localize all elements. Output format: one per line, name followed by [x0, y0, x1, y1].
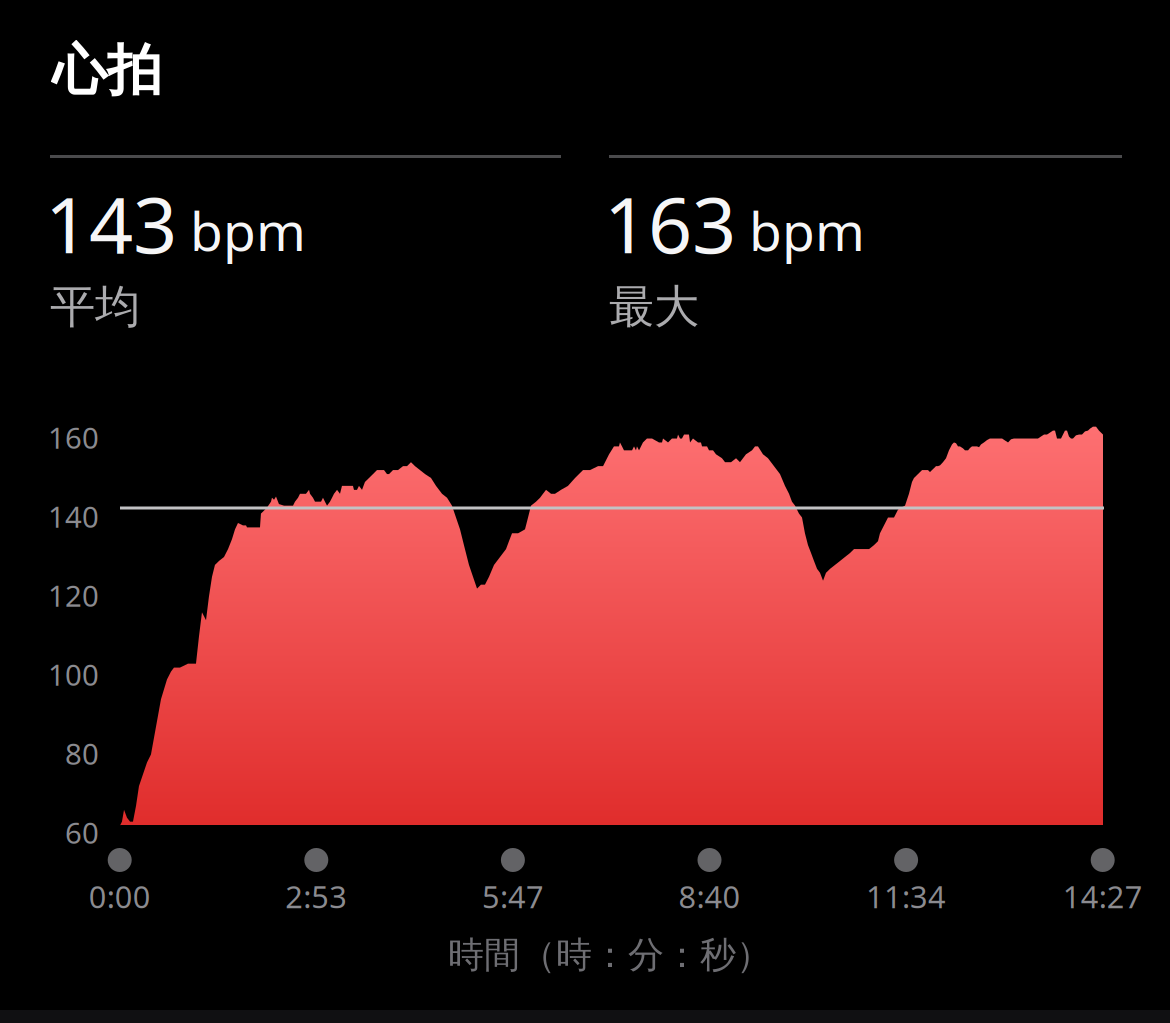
button[interactable]: 0:00 [20, 848, 220, 917]
button[interactable]: 8:40 [609, 848, 809, 917]
staticText: 160 [48, 418, 99, 457]
button[interactable]: 2:53 [216, 848, 416, 917]
button[interactable]: 14:27 [1003, 848, 1170, 917]
staticText: 0:00 [89, 876, 151, 917]
staticText: 100 [48, 655, 99, 694]
staticText: bpm [190, 195, 306, 266]
button[interactable]: 11:34 [806, 848, 1006, 917]
button[interactable]: 163 [609, 155, 1122, 333]
staticText: 心拍 [52, 37, 162, 104]
staticText: 8:40 [678, 876, 740, 917]
button[interactable]: 5:47 [413, 848, 613, 917]
button[interactable]: 143 [50, 155, 561, 333]
staticText: 5:47 [482, 876, 544, 917]
staticText: 163 [604, 172, 736, 275]
staticText: 120 [48, 576, 99, 615]
staticText: 143 [45, 172, 177, 275]
staticText: 80 [65, 734, 99, 773]
staticText: 平均 [50, 279, 140, 335]
staticText: bpm [749, 195, 865, 266]
staticText: 140 [48, 497, 99, 536]
staticText: 最大 [609, 279, 699, 335]
staticText: 時間（時：分：秒） [448, 933, 772, 977]
staticText: 11:34 [866, 876, 946, 917]
staticText: 14:27 [1063, 876, 1143, 917]
staticText: 60 [65, 813, 99, 852]
staticText: 2:53 [285, 876, 347, 917]
